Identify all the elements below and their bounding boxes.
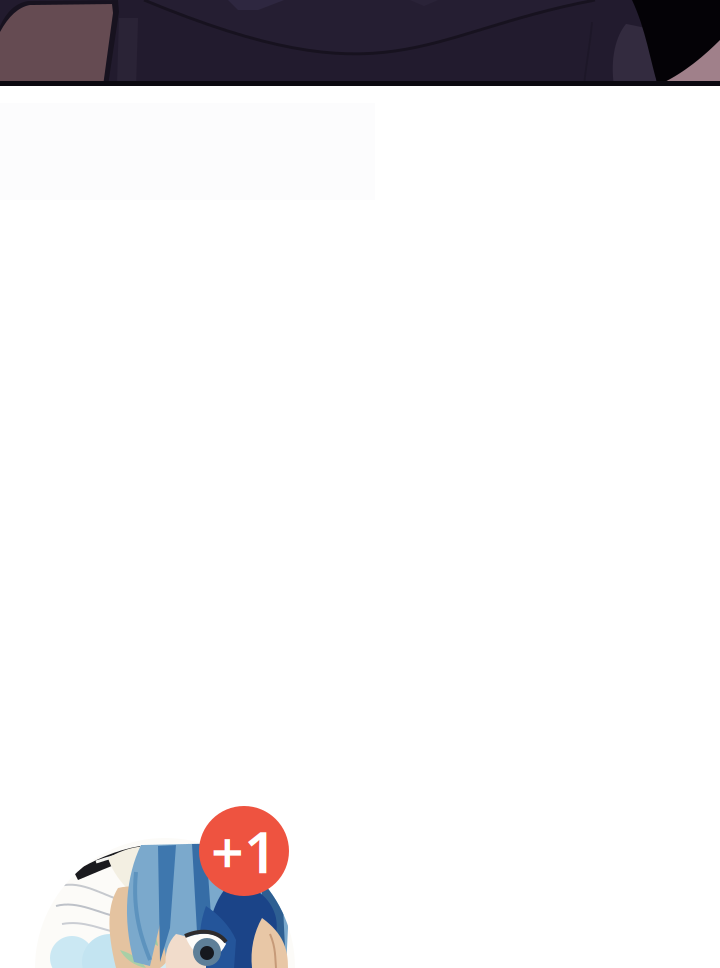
button[interactable]: Commenter avatar xyxy=(0,0,720,968)
staticText: +1 xyxy=(211,813,277,889)
